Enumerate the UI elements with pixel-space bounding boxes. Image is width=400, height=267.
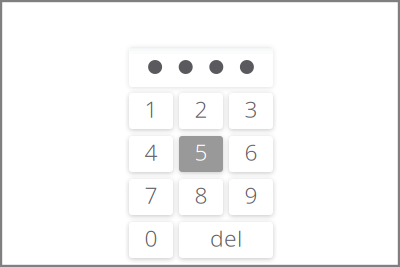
button[interactable]: 6 xyxy=(229,136,273,172)
staticText: 4 xyxy=(144,137,157,167)
button[interactable]: 5 xyxy=(179,136,223,172)
button[interactable]: 1 xyxy=(129,93,173,129)
button[interactable]: 7 xyxy=(129,179,173,215)
button[interactable]: 9 xyxy=(229,179,273,215)
staticText: 5 xyxy=(194,137,207,167)
staticText: 6 xyxy=(244,137,257,167)
button[interactable]: 8 xyxy=(179,179,223,215)
staticText: 7 xyxy=(144,180,157,210)
staticText: 1 xyxy=(144,94,157,124)
button[interactable]: 2 xyxy=(179,93,223,129)
staticText: 9 xyxy=(244,180,257,210)
button[interactable]: del xyxy=(179,222,273,258)
button[interactable]: 3 xyxy=(229,93,273,129)
staticText: 2 xyxy=(194,94,207,124)
staticText: 3 xyxy=(244,94,257,124)
staticText: del xyxy=(210,223,242,253)
staticText: 0 xyxy=(144,223,157,253)
staticText: 8 xyxy=(194,180,207,210)
button[interactable]: 4 xyxy=(129,136,173,172)
button[interactable]: 0 xyxy=(129,222,173,258)
